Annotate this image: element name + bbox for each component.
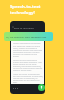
button[interactable]: More options bbox=[13, 87, 18, 91]
staticText: Back to recording bbox=[14, 26, 34, 29]
button[interactable]: Record bbox=[38, 84, 45, 91]
staticText: Speech recognition technology has advanc… bbox=[13, 42, 43, 83]
staticText: Hi, I'm listening. Start speaking now bbox=[6, 35, 47, 38]
button[interactable]: Hi, I'm listening. Start speaking now bbox=[4, 32, 53, 41]
staticText: technology! bbox=[10, 10, 35, 16]
staticText: • • • bbox=[13, 87, 18, 91]
staticText: Speech-to-text bbox=[10, 4, 41, 10]
button[interactable]: Back to recording bbox=[12, 25, 34, 29]
